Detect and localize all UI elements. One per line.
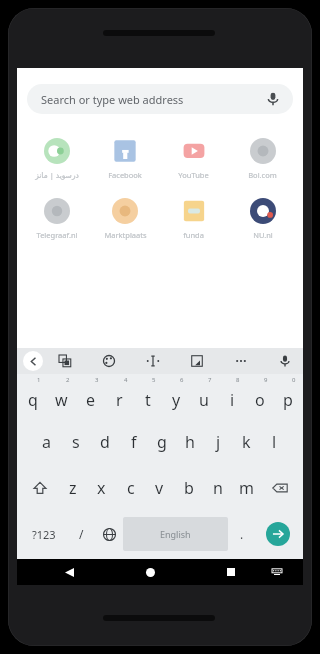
button[interactable]: Handwriting: [188, 352, 206, 370]
staticText: 2: [66, 376, 70, 384]
staticText: English: [160, 528, 191, 540]
staticText: y: [172, 389, 181, 411]
button[interactable]: s: [61, 419, 90, 465]
staticText: YouTube: [178, 170, 209, 180]
staticText: h: [185, 431, 195, 453]
staticText: 8: [236, 376, 240, 384]
button[interactable]: 1: [18, 374, 47, 419]
staticText: 0: [292, 376, 296, 384]
button[interactable]: Search or type web address: [27, 84, 293, 114]
staticText: j: [216, 431, 221, 453]
button[interactable]: Recents: [218, 559, 244, 585]
button[interactable]: NU.nl: [228, 196, 297, 242]
button[interactable]: ?123: [21, 511, 67, 557]
button[interactable]: g: [148, 419, 176, 465]
button[interactable]: Back: [56, 559, 82, 585]
staticText: 6: [180, 376, 184, 384]
button[interactable]: Go: [256, 511, 299, 557]
button[interactable]: k: [232, 419, 260, 465]
staticText: u: [199, 389, 209, 411]
button[interactable]: Backspace: [261, 465, 299, 511]
staticText: درسوید | مانز: [35, 170, 79, 180]
staticText: i: [230, 389, 235, 411]
button[interactable]: 3: [76, 374, 105, 419]
button[interactable]: Themes: [100, 352, 118, 370]
staticText: 1: [37, 376, 41, 384]
button[interactable]: c: [116, 465, 145, 511]
staticText: 3: [95, 376, 99, 384]
staticText: 7: [208, 376, 212, 384]
button[interactable]: 9: [246, 374, 274, 419]
staticText: s: [72, 431, 80, 453]
staticText: funda: [183, 230, 204, 240]
staticText: e: [86, 389, 96, 411]
staticText: t: [145, 389, 151, 411]
button[interactable]: درسوید | مانز: [23, 136, 91, 182]
button[interactable]: l: [260, 419, 288, 465]
button[interactable]: d: [90, 419, 119, 465]
staticText: Marktplaats: [104, 230, 147, 240]
staticText: a: [42, 431, 51, 453]
button[interactable]: x: [87, 465, 116, 511]
staticText: r: [116, 389, 123, 411]
button[interactable]: 0: [274, 374, 302, 419]
button[interactable]: Facebook: [91, 136, 159, 182]
button[interactable]: More options: [232, 352, 250, 370]
staticText: o: [255, 389, 265, 411]
button[interactable]: Marktplaats: [91, 196, 159, 242]
button[interactable]: Shift: [21, 465, 58, 511]
staticText: b: [184, 477, 194, 499]
button[interactable]: z: [58, 465, 87, 511]
staticText: c: [127, 477, 135, 499]
button[interactable]: b: [174, 465, 203, 511]
button[interactable]: Telegraaf.nl: [23, 196, 91, 242]
staticText: ?123: [32, 527, 56, 542]
button[interactable]: Change language: [95, 511, 123, 557]
button[interactable]: Switch keyboard: [264, 559, 290, 585]
staticText: l: [272, 431, 277, 453]
staticText: x: [97, 477, 106, 499]
button[interactable]: Voice search: [263, 89, 283, 109]
button[interactable]: a: [32, 419, 61, 465]
button[interactable]: Translate: [56, 352, 74, 370]
staticText: 9: [264, 376, 268, 384]
button[interactable]: j: [204, 419, 232, 465]
staticText: v: [155, 477, 164, 499]
button[interactable]: 7: [190, 374, 218, 419]
button[interactable]: f: [119, 419, 148, 465]
staticText: k: [242, 431, 251, 453]
staticText: 5: [152, 376, 156, 384]
button[interactable]: Text edit: [144, 352, 162, 370]
button[interactable]: 2: [47, 374, 76, 419]
staticText: .: [240, 526, 244, 542]
button[interactable]: 5: [134, 374, 162, 419]
button[interactable]: Back: [23, 351, 43, 371]
button[interactable]: m: [232, 465, 261, 511]
staticText: g: [157, 431, 167, 453]
button[interactable]: n: [203, 465, 232, 511]
button[interactable]: h: [176, 419, 204, 465]
staticText: d: [100, 431, 110, 453]
button[interactable]: funda: [159, 196, 228, 242]
staticText: Facebook: [108, 170, 142, 180]
staticText: w: [55, 389, 68, 411]
button[interactable]: YouTube: [159, 136, 228, 182]
button[interactable]: English: [123, 517, 228, 551]
button[interactable]: Voice input: [276, 352, 294, 370]
button[interactable]: Bol.com: [228, 136, 297, 182]
button[interactable]: 8: [218, 374, 246, 419]
button[interactable]: /: [67, 511, 95, 557]
staticText: /: [79, 526, 84, 542]
staticText: q: [28, 389, 38, 411]
button[interactable]: 4: [105, 374, 134, 419]
staticText: Search or type web address: [41, 92, 184, 107]
button[interactable]: v: [145, 465, 174, 511]
button[interactable]: 6: [162, 374, 190, 419]
button[interactable]: Home: [137, 559, 163, 585]
staticText: p: [283, 389, 293, 411]
button[interactable]: .: [228, 511, 256, 557]
staticText: f: [131, 431, 137, 453]
staticText: n: [213, 477, 223, 499]
staticText: NU.nl: [253, 230, 273, 240]
staticText: 4: [124, 376, 128, 384]
